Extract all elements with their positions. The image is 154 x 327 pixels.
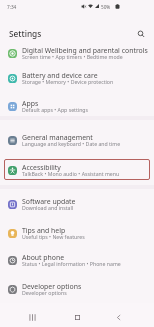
- staticText: Software update: [22, 197, 154, 206]
- staticText: Digital Wellbeing and parental controls: [22, 46, 154, 55]
- staticText: General management: [22, 133, 154, 142]
- staticText: Settings: [9, 28, 42, 39]
- button[interactable]: General management: [0, 128, 154, 152]
- staticText: Apps: [22, 99, 154, 108]
- staticText: Screen time • App timers • Bedtime mode: [22, 53, 154, 60]
- button[interactable]: Digital Wellbeing and parental controls: [0, 41, 154, 65]
- button[interactable]: Software update: [0, 192, 154, 216]
- staticText: TalkBack • Mono audio • Assistant menu: [22, 170, 154, 177]
- button[interactable]: Developer options: [0, 277, 154, 301]
- staticText: Default apps • App settings: [22, 106, 154, 113]
- staticText: About phone: [22, 253, 154, 262]
- button[interactable]: Accessibility: [0, 158, 154, 182]
- staticText: Developer options: [22, 289, 154, 296]
- staticText: Developer options: [22, 282, 154, 291]
- button[interactable]: Home: [66, 306, 88, 327]
- staticText: Battery and device care: [22, 71, 154, 80]
- staticText: Storage • Memory • Device protection: [22, 78, 154, 85]
- button[interactable]: About phone: [0, 248, 154, 272]
- staticText: 7:34: [7, 4, 17, 10]
- button[interactable]: Search: [133, 26, 148, 41]
- staticText: Language and keyboard • Date and time: [22, 140, 154, 147]
- staticText: Download and install: [22, 204, 154, 211]
- staticText: Useful tips • New features: [22, 233, 154, 240]
- button[interactable]: Back: [107, 306, 129, 327]
- staticText: Status • Legal information • Phone name: [22, 260, 154, 267]
- button[interactable]: Battery and device care: [0, 66, 154, 90]
- staticText: 50%: [101, 4, 111, 10]
- button[interactable]: Tips and help: [0, 221, 154, 245]
- button[interactable]: Apps: [0, 94, 154, 118]
- staticText: Tips and help: [22, 226, 154, 235]
- button[interactable]: Recents: [21, 306, 43, 327]
- staticText: Accessibility: [22, 163, 154, 172]
